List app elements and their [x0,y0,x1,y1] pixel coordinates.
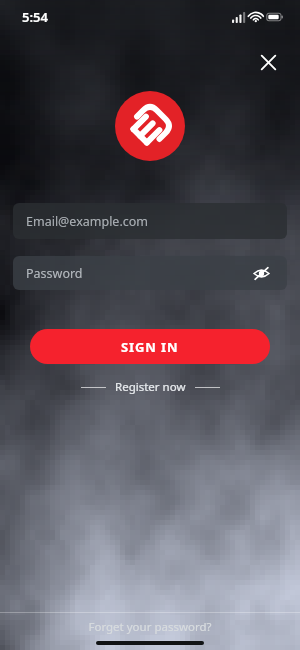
staticText: 5:54 [22,8,48,26]
button[interactable]: Forget your password? [0,613,300,650]
staticText: Forget your password? [88,619,212,635]
button[interactable]: Email@example.com [13,203,287,239]
button[interactable]: SIGN IN [30,329,270,364]
staticText: SIGN IN [121,338,179,356]
button[interactable]: App logo [115,91,185,161]
staticText: Register now [115,379,186,395]
staticText: Email@example.com [26,213,149,230]
button[interactable]: Password [13,256,287,290]
button[interactable]: Register now [106,377,195,397]
button[interactable]: Close [248,42,288,82]
button[interactable]: Show password [248,260,274,286]
staticText: Password [26,265,83,282]
